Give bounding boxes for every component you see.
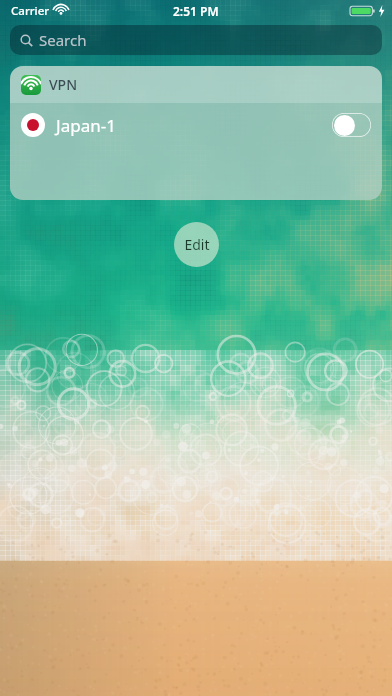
staticText: Japan-1 [56,114,116,137]
button[interactable]: Search [10,25,382,55]
button[interactable]: Toggle Japan-1 VPN [332,113,371,137]
staticText: Edit [184,235,210,254]
staticText: Search [39,30,87,50]
button[interactable]: Japan-1 [10,103,382,147]
button[interactable]: Edit [174,222,219,267]
button[interactable]: VPN [10,66,382,103]
staticText: VPN [49,75,78,94]
staticText: 2:51 PM [173,3,219,19]
staticText: Carrier [11,3,50,19]
